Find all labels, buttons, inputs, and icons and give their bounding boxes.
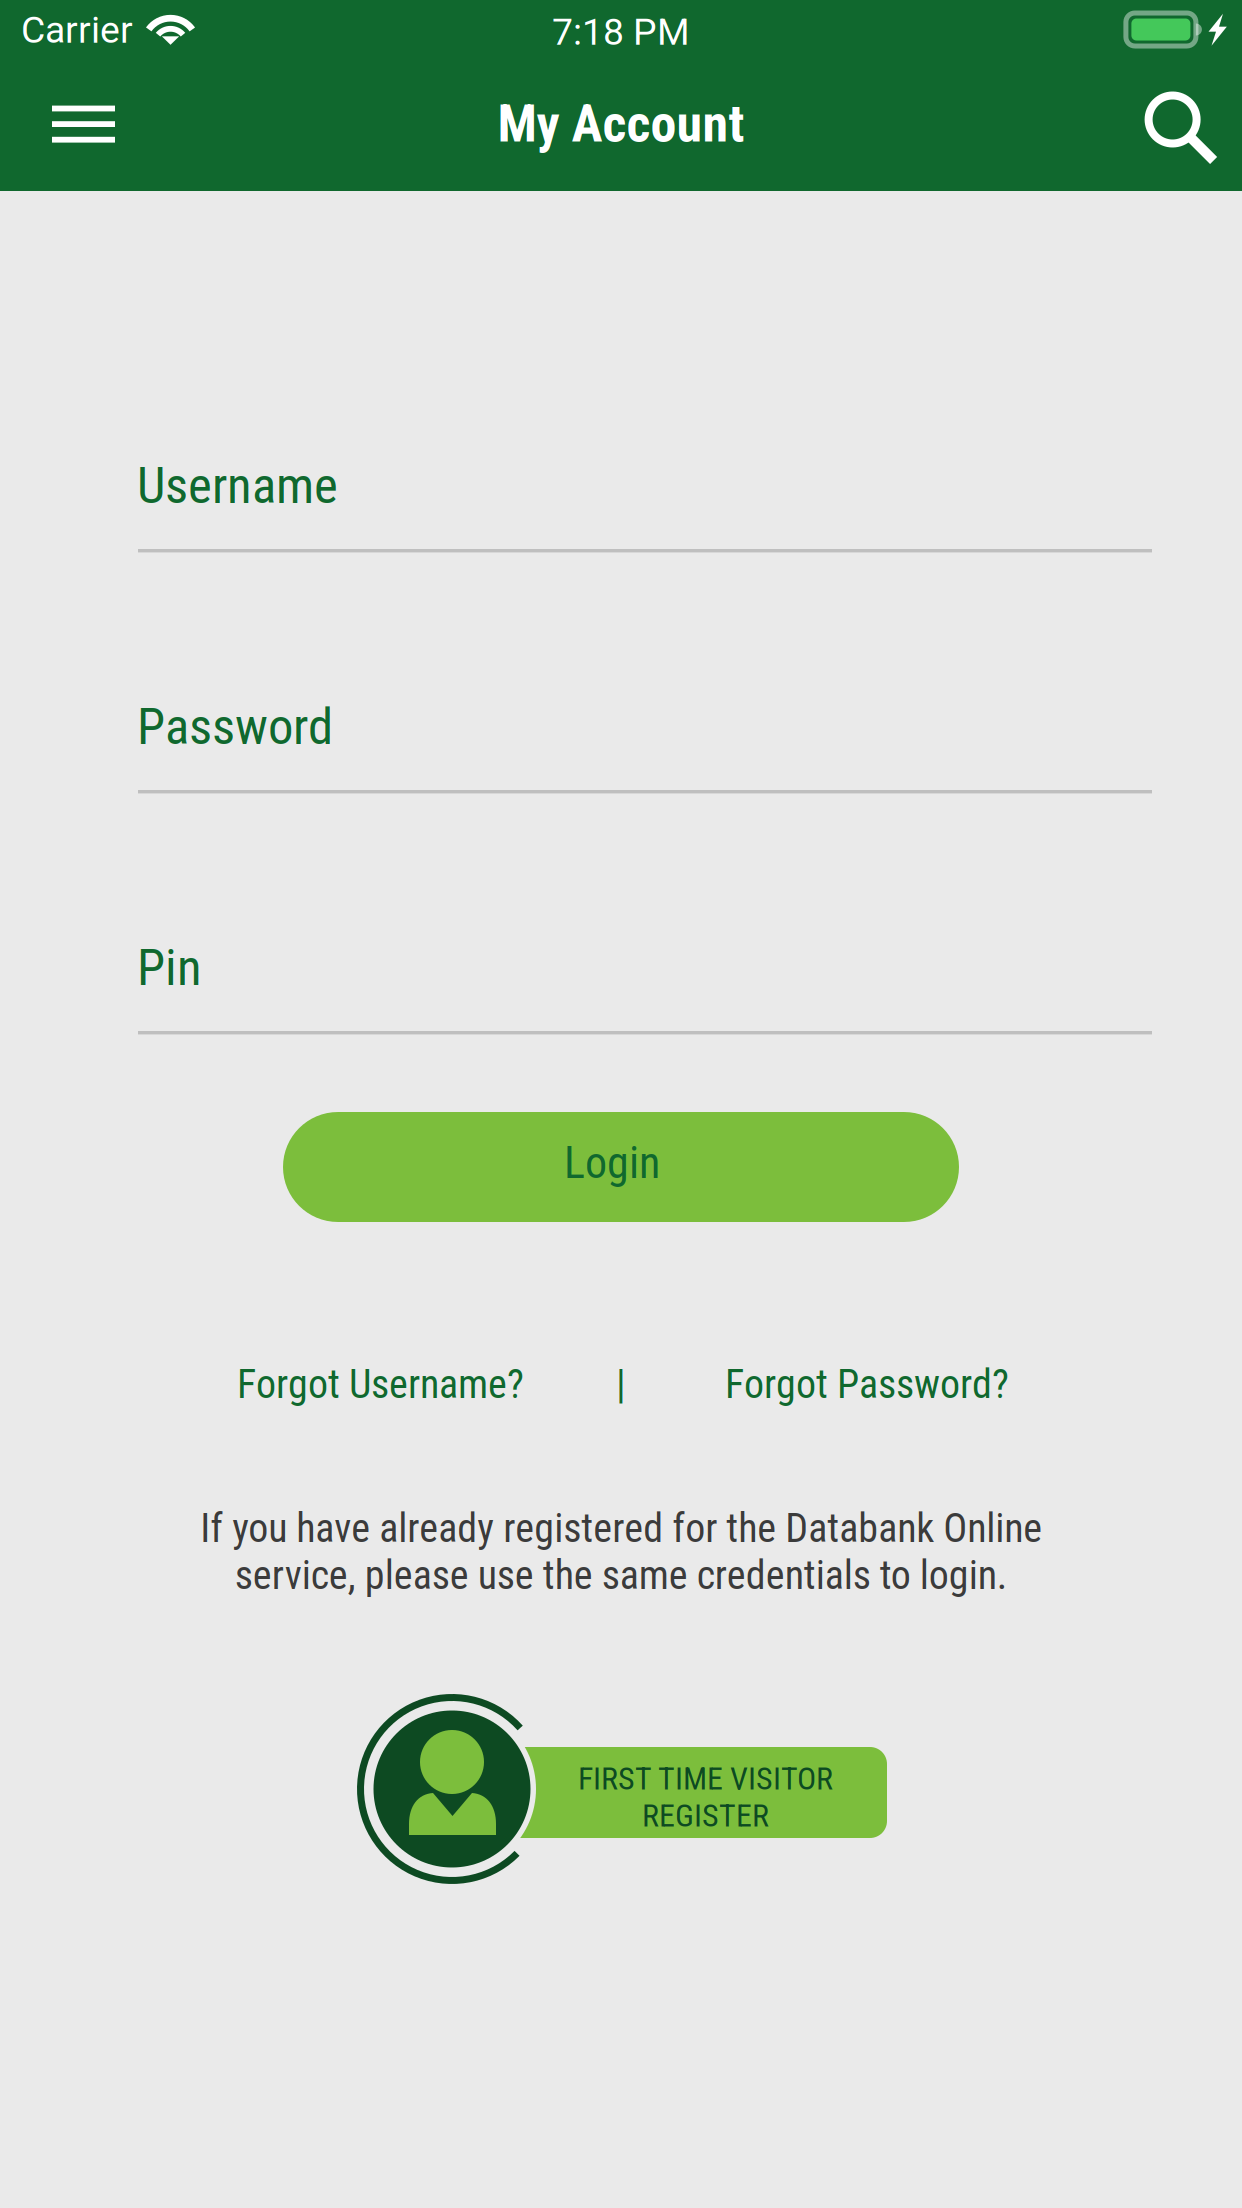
button[interactable]: Forgot Username? xyxy=(225,1349,536,1420)
staticText: Pin xyxy=(137,938,202,997)
button[interactable]: Forgot Password? xyxy=(713,1349,1021,1420)
staticText: Forgot Password? xyxy=(725,1361,1009,1408)
staticText: | xyxy=(616,1361,626,1408)
staticText: Password xyxy=(137,697,333,756)
button[interactable]: Menu xyxy=(0,70,155,179)
staticText: Forgot Username? xyxy=(237,1361,524,1408)
staticText: If you have already registered for the D… xyxy=(200,1505,1042,1599)
staticText: 7:18 PM xyxy=(552,10,690,54)
button[interactable]: Search xyxy=(1115,65,1242,197)
staticText: FIRST TIME VISITOR xyxy=(578,1760,833,1797)
staticText: Username xyxy=(137,456,338,515)
staticText: REGISTER xyxy=(642,1797,769,1834)
button[interactable]: Login xyxy=(283,1112,959,1222)
staticText: My Account xyxy=(497,93,744,154)
staticText: Carrier xyxy=(21,8,133,52)
staticText: Login xyxy=(564,1137,660,1189)
button[interactable]: FIRST TIME VISITOR xyxy=(356,1693,896,1889)
